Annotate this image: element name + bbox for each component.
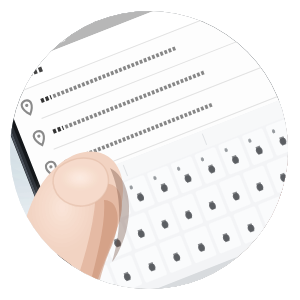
button[interactable]: Photo of a hand holding a phone showing … xyxy=(0,0,300,300)
